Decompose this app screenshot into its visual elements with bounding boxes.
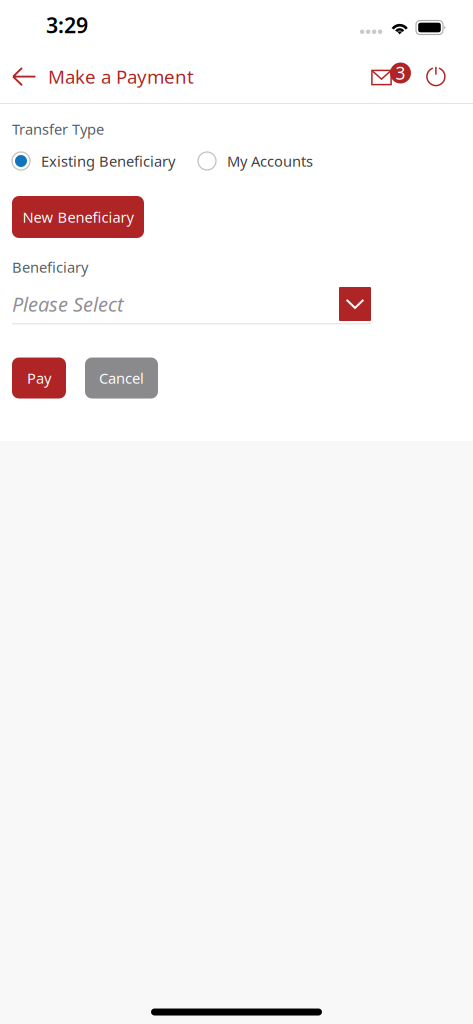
- staticText: 3: [395, 61, 405, 84]
- button[interactable]: Beneficiary, Please Select: [12, 287, 371, 325]
- staticText: Transfer Type: [12, 119, 104, 139]
- staticText: Beneficiary: [12, 257, 88, 277]
- staticText: Cancel: [99, 368, 144, 388]
- button[interactable]: Pay: [12, 357, 66, 398]
- button[interactable]: Cancel: [85, 357, 158, 398]
- staticText: Pay: [27, 368, 51, 388]
- button[interactable]: Messages: [367, 61, 411, 91]
- staticText: Please Select: [12, 291, 124, 317]
- staticText: Existing Beneficiary: [41, 151, 175, 171]
- staticText: My Accounts: [227, 151, 313, 171]
- button[interactable]: My Accounts: [198, 151, 313, 171]
- button[interactable]: Make a Payment: [0, 54, 194, 99]
- button[interactable]: Existing Beneficiary: [12, 151, 175, 171]
- button[interactable]: New Beneficiary: [12, 196, 144, 238]
- staticText: 3:29: [46, 11, 88, 39]
- staticText: New Beneficiary: [22, 207, 133, 227]
- staticText: Make a Payment: [48, 64, 194, 89]
- button[interactable]: Log out: [422, 62, 450, 91]
